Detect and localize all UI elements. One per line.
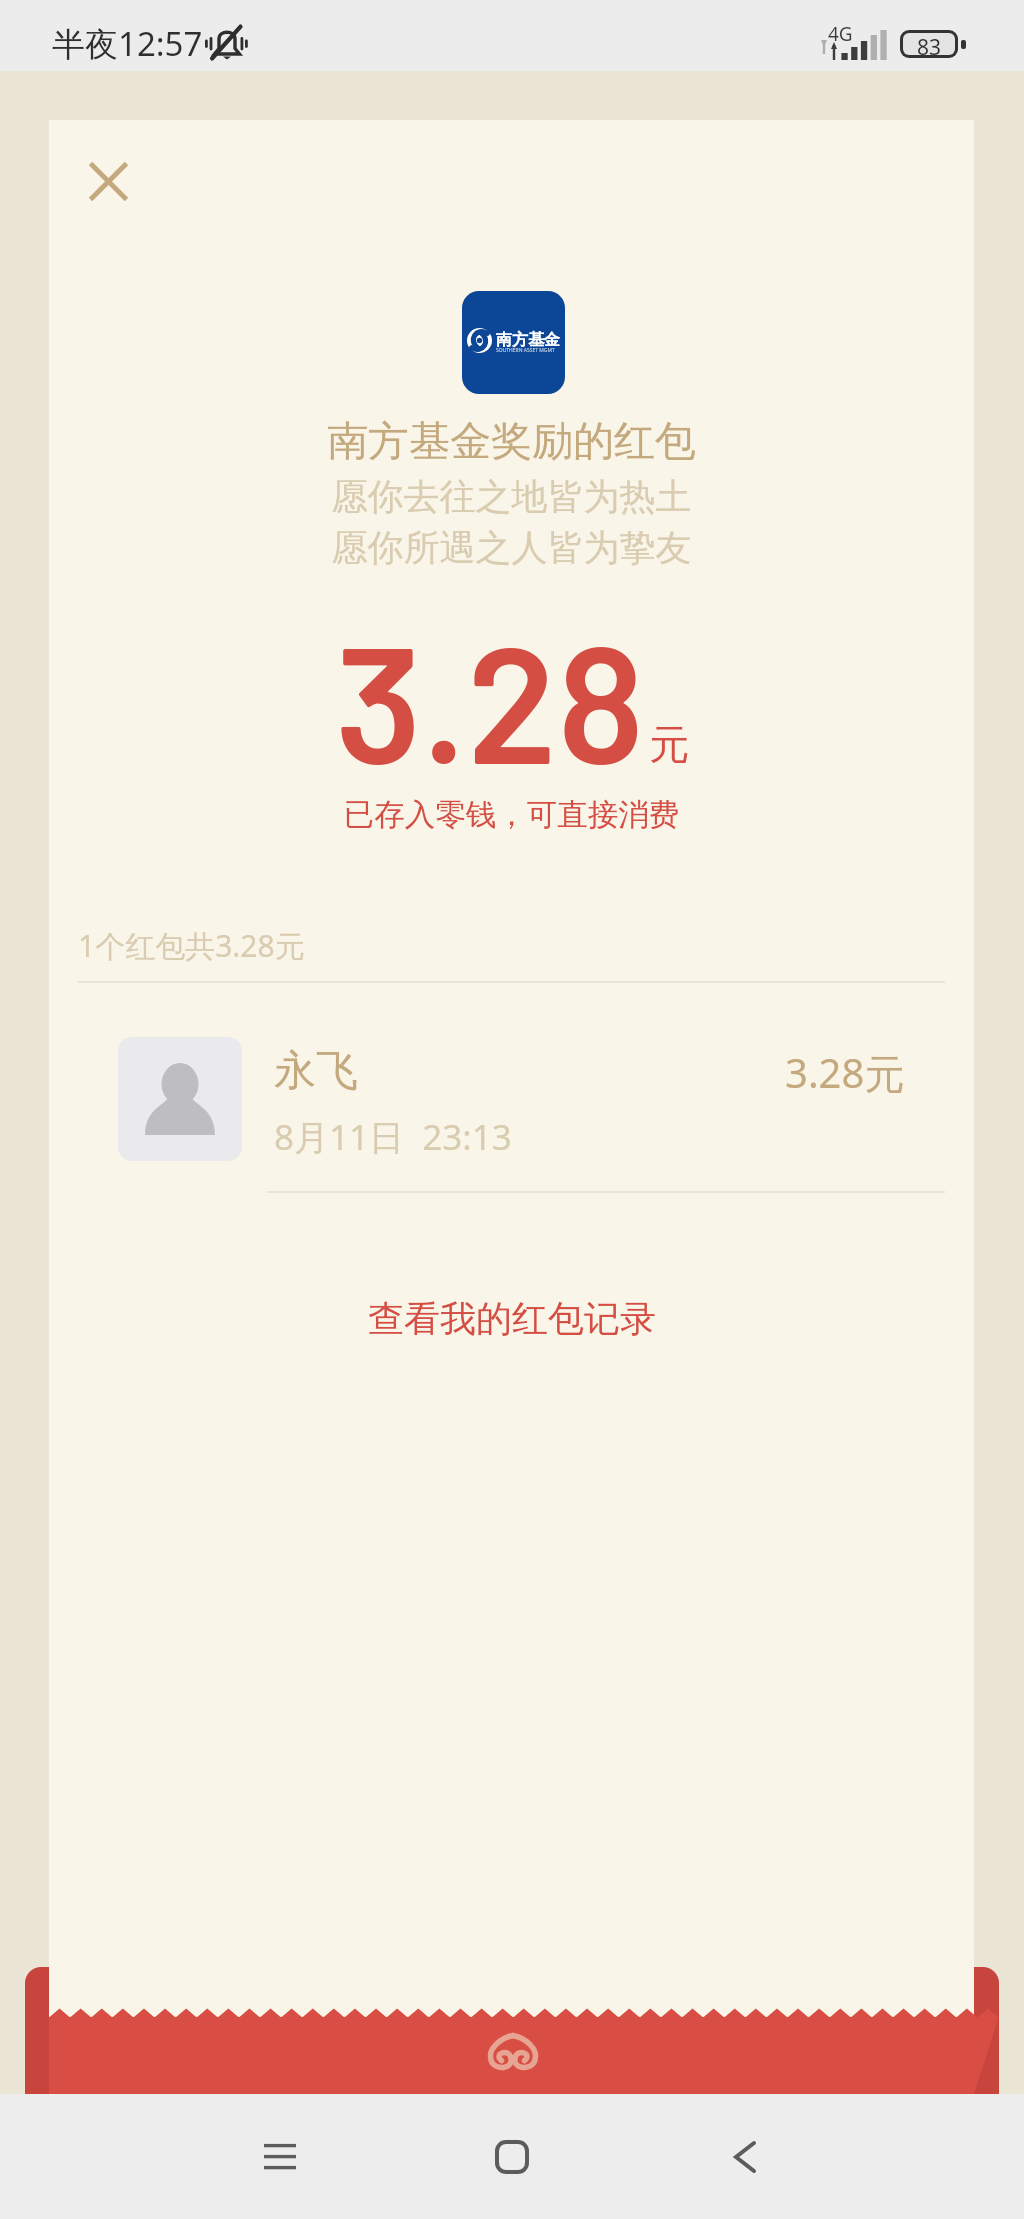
- staticText: 已存入零钱，可直接消费: [49, 796, 974, 834]
- staticText: 南方基金奖励的红包: [49, 416, 974, 468]
- staticText: 查看我的红包记录: [368, 1296, 656, 1341]
- staticText: SOUTHERN ASSET MGMT: [496, 347, 555, 354]
- staticText: 3.28: [335, 600, 645, 797]
- button[interactable]: Home: [454, 2094, 570, 2219]
- button[interactable]: Back: [688, 2094, 804, 2219]
- button[interactable]: [49, 1000, 974, 1193]
- button[interactable]: Close: [72, 145, 144, 217]
- staticText: 半夜12:57: [52, 21, 203, 66]
- staticText: 1个红包共3.28元: [78, 925, 305, 966]
- staticText: 3.28元: [785, 1045, 905, 1100]
- staticText: 愿你去往之地皆为热土 愿你所遇之人皆为挚友: [49, 474, 974, 571]
- staticText: 8月11日 23:13: [274, 1113, 512, 1161]
- staticText: 南方基金: [496, 330, 560, 350]
- staticText: 83: [917, 33, 942, 55]
- button[interactable]: Recent apps: [222, 2094, 338, 2219]
- staticText: 元: [649, 719, 689, 769]
- staticText: 永飞: [274, 1045, 358, 1098]
- staticText: 4G: [828, 21, 853, 47]
- button[interactable]: 查看我的红包记录: [342, 1280, 682, 1357]
